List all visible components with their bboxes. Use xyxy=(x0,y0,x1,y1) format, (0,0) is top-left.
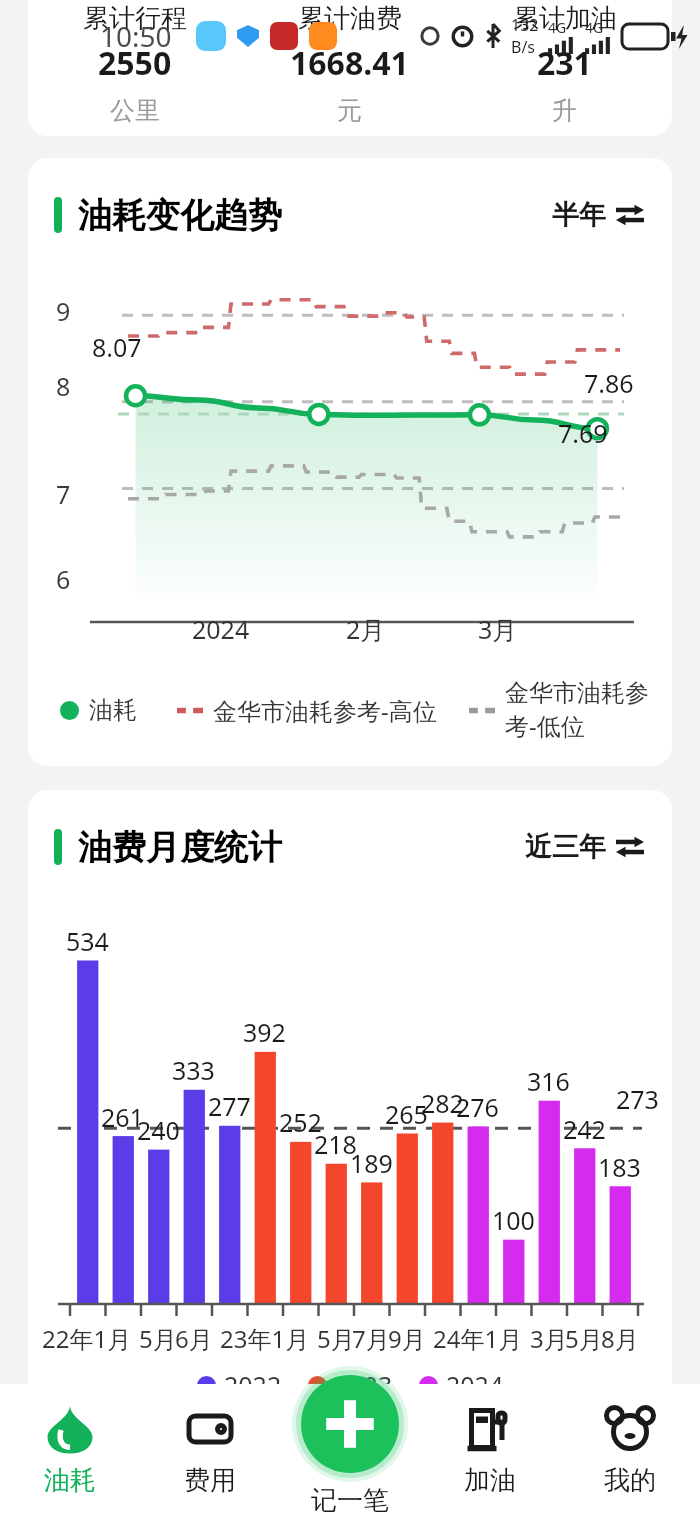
staticText: 3月 xyxy=(530,1322,568,1355)
staticText: 记一笔 xyxy=(311,1484,389,1516)
staticText: 9月 xyxy=(388,1322,426,1355)
staticText: 累计油费 xyxy=(298,2,402,35)
staticText: 油耗变化趋势 xyxy=(78,194,282,237)
staticText: 累计加油 xyxy=(513,2,617,35)
staticText: 2024 xyxy=(446,1368,504,1402)
button[interactable]: 费用 xyxy=(140,1384,280,1516)
staticText: 油耗 xyxy=(89,695,137,725)
staticText: 公里 xyxy=(110,95,160,126)
staticText: 2月 xyxy=(346,612,386,646)
staticText: 265 xyxy=(385,1097,428,1131)
staticText: 276 xyxy=(456,1090,499,1124)
staticText: 22年1月 xyxy=(42,1322,132,1355)
staticText: 油耗 xyxy=(44,1464,96,1497)
staticText: 9 xyxy=(56,294,71,328)
staticText: 231 xyxy=(537,41,592,85)
button[interactable]: 油费月度统计 xyxy=(28,790,672,1424)
staticText: 252 xyxy=(279,1105,322,1139)
other: 切换周期 xyxy=(616,201,644,229)
other: 记一笔 xyxy=(292,1366,408,1482)
staticText: 8 xyxy=(56,369,71,403)
staticText: 316 xyxy=(527,1064,570,1098)
staticText: 近三年 xyxy=(525,830,606,864)
staticText: 333 xyxy=(172,1053,215,1087)
staticText: 8.07 xyxy=(92,330,142,364)
button[interactable]: 记一笔 xyxy=(265,1366,435,1516)
staticText: 7.86 xyxy=(584,366,634,400)
staticText: 6月 xyxy=(175,1322,213,1355)
staticText: 23年1月 xyxy=(220,1322,310,1355)
staticText: 189 xyxy=(350,1146,393,1180)
button[interactable]: 加油 xyxy=(420,1384,560,1516)
staticText: 183 xyxy=(598,1150,641,1184)
staticText: 7 xyxy=(56,477,71,511)
button[interactable]: 油耗变化趋势 xyxy=(28,158,672,766)
staticText: 费用 xyxy=(184,1464,236,1497)
staticText: 半年 xyxy=(552,198,606,232)
staticText: 油费月度统计 xyxy=(78,826,282,869)
staticText: 242 xyxy=(563,1112,606,1146)
staticText: 8月 xyxy=(601,1322,639,1355)
staticText: 我的 xyxy=(604,1464,656,1497)
button[interactable]: 累计行程 xyxy=(28,0,672,136)
button[interactable]: 我的 xyxy=(560,1384,700,1516)
staticText: 2023 xyxy=(335,1368,393,1402)
staticText: 加油 xyxy=(464,1464,516,1497)
staticText: 1668.41 xyxy=(290,41,409,85)
staticText: 392 xyxy=(243,1015,286,1049)
staticText: 4G xyxy=(585,18,604,37)
staticText: 218 xyxy=(314,1127,357,1161)
staticText: 5月 xyxy=(317,1322,355,1355)
other: 切换周期 xyxy=(616,833,644,861)
staticText: 金华市油耗参考-低位 xyxy=(505,678,672,742)
staticText: 132 xyxy=(511,14,539,36)
staticText: 4G xyxy=(548,18,567,37)
staticText: 3月 xyxy=(478,612,518,646)
staticText: 升 xyxy=(552,95,577,126)
staticText: 277 xyxy=(208,1089,251,1123)
staticText: 534 xyxy=(66,924,109,958)
staticText: 240 xyxy=(137,1113,180,1147)
staticText: 10:50 xyxy=(100,17,172,55)
staticText: 5月 xyxy=(139,1322,177,1355)
staticText: 5月 xyxy=(565,1322,603,1355)
staticText: 273 xyxy=(616,1082,659,1116)
staticText: 累计行程 xyxy=(83,2,187,35)
staticText: 2024 xyxy=(192,612,250,646)
staticText: 7.69 xyxy=(558,416,608,450)
button[interactable]: 近三年 xyxy=(521,824,648,870)
staticText: 100 xyxy=(492,1203,535,1237)
button[interactable]: 半年 xyxy=(548,192,648,238)
staticText: 282 xyxy=(421,1086,464,1120)
staticText: 2550 xyxy=(98,41,172,85)
staticText: 6 xyxy=(56,562,71,596)
staticText: 7月 xyxy=(352,1322,390,1355)
button[interactable]: 油耗 xyxy=(0,1384,140,1516)
staticText: B/s xyxy=(511,36,536,58)
staticText: 元 xyxy=(337,95,362,126)
staticText: 金华市油耗参考-高位 xyxy=(213,694,437,727)
staticText: 24年1月 xyxy=(433,1322,523,1355)
staticText: 261 xyxy=(101,1100,144,1134)
staticText: 2022 xyxy=(224,1368,282,1402)
